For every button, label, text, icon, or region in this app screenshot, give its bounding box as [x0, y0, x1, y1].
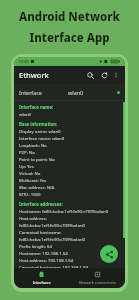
staticText: fe80::bcba:1eff:fe90:c709%wlan0	[19, 236, 120, 242]
staticText: Display name: wlan0	[19, 128, 120, 134]
staticText: P2P: No	[19, 149, 120, 155]
staticText: Android Network	[19, 9, 120, 25]
staticText: Loopback: No	[19, 142, 120, 148]
staticText: Host address: 192.168.1.54	[19, 257, 120, 263]
staticText: Interface	[19, 89, 42, 96]
staticText: Network connections	[79, 280, 116, 285]
staticText: Interface name:	[19, 104, 120, 110]
staticText: Canonical hostname:	[19, 229, 120, 235]
staticText: Multicast: Yes	[19, 177, 120, 183]
button[interactable]: Interfaces	[14, 268, 69, 288]
staticText: Interface App	[29, 30, 110, 46]
button[interactable]: Network connections	[69, 268, 125, 288]
staticText: fe80::bcba:1eff:fe90:c709%wlan0	[19, 222, 120, 228]
staticText: Prefix length: 64	[19, 243, 120, 249]
staticText: Host address:	[19, 215, 120, 221]
button[interactable]: Interface	[14, 84, 125, 100]
staticText: MTU: 1500	[19, 191, 120, 197]
staticText: Base information:	[19, 121, 120, 127]
staticText: wlan0	[68, 89, 84, 96]
button[interactable]: Refresh	[98, 69, 110, 81]
staticText: Canonical hostname: 192.168.1.54	[19, 264, 120, 268]
staticText: Interface name: wlan0	[19, 135, 120, 141]
staticText: Interface addresses:	[19, 201, 120, 207]
button[interactable]: Share	[100, 245, 118, 263]
staticText: Up: Yes	[19, 163, 120, 169]
staticText: 10:45	[18, 59, 29, 65]
staticText: Virtual: No	[19, 170, 120, 176]
staticText: Ethwork	[19, 70, 49, 80]
staticText: Interfaces	[33, 280, 51, 285]
staticText: Mac address: N/A	[19, 184, 120, 190]
staticText: wlan0	[19, 111, 120, 117]
staticText: Hostname: 192.168.1.54	[19, 250, 120, 256]
button[interactable]: More options	[111, 70, 121, 80]
staticText: Hostname: fe80::bcba:1eff:fe90:c709%wlan…	[19, 208, 120, 214]
button[interactable]: Search	[84, 69, 96, 81]
staticText: Point to point: No	[19, 156, 120, 162]
